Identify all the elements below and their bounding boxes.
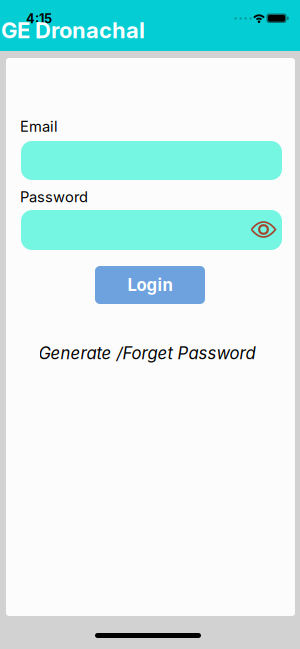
button[interactable]: Email [21,141,282,180]
staticText: GE Dronachal [1,17,145,43]
staticText: 4:15 [26,11,52,26]
button[interactable]: Show password [250,221,276,238]
button[interactable]: Generate /Forget Password [38,343,255,363]
staticText: Generate /Forget Password [38,343,255,363]
button[interactable]: Login [95,266,205,304]
staticText: Email [20,117,58,135]
staticText: Password [20,188,88,206]
button[interactable]: Password [21,210,282,250]
staticText: Login [127,275,172,295]
